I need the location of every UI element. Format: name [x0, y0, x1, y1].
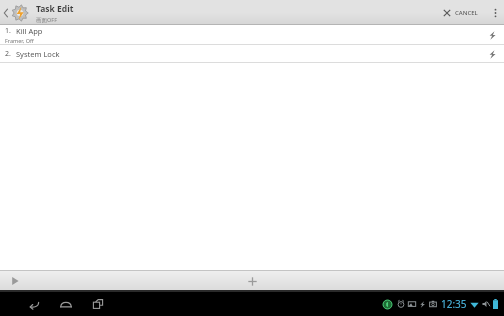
button[interactable]: 1. [0, 25, 504, 45]
button[interactable]: Navigate up [0, 0, 31, 25]
staticText: Kill App [16, 26, 43, 36]
staticText: Task Edit [36, 3, 74, 15]
button[interactable]: Action condition [486, 29, 498, 41]
staticText: 1. [5, 26, 11, 36]
button[interactable]: Back [22, 294, 46, 314]
button[interactable]: Recent apps [86, 294, 110, 314]
staticText: Framer, Off [5, 37, 34, 44]
button[interactable]: CANCEL [436, 0, 484, 25]
button[interactable]: More options [486, 0, 504, 25]
staticText: 画面OFF [36, 16, 58, 24]
button[interactable]: Home [54, 294, 78, 314]
button[interactable]: 2. [0, 45, 504, 63]
button[interactable]: Run task [0, 270, 30, 292]
staticText: 12:35 [441, 297, 467, 311]
staticText: 2. [5, 49, 11, 59]
button[interactable]: Action condition [486, 48, 498, 60]
button[interactable]: Add action [235, 270, 269, 292]
button[interactable]: Notification [381, 298, 394, 311]
staticText: CANCEL [455, 9, 478, 17]
staticText: System Lock [16, 49, 60, 59]
